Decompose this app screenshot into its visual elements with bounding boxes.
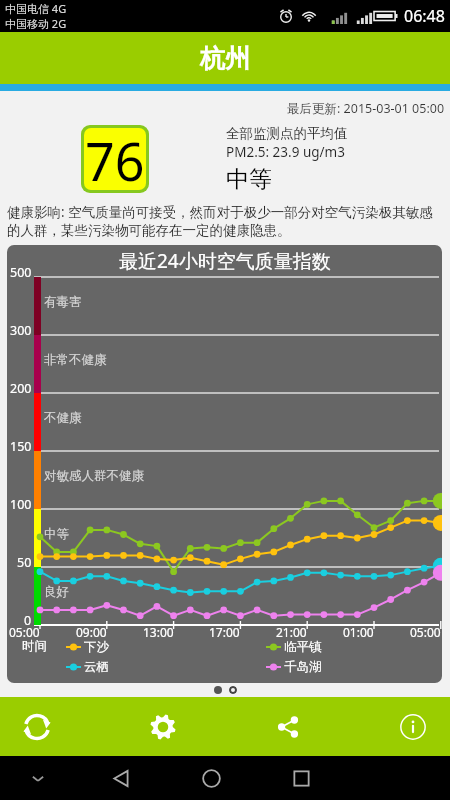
staticText: 0 xyxy=(24,612,32,629)
staticText: 千岛湖 xyxy=(284,659,322,675)
staticText: 最近24小时空气质量指数 xyxy=(119,248,331,274)
staticText: 50 xyxy=(17,554,32,571)
staticText: 01:00 xyxy=(343,624,374,640)
staticText: 中等 xyxy=(226,165,272,194)
staticText: 76 xyxy=(85,128,145,187)
staticText: 05:00 xyxy=(9,624,40,640)
staticText: 150 xyxy=(10,438,32,455)
button[interactable]: Settings xyxy=(100,697,225,756)
staticText: 中国电信 4G xyxy=(5,1,67,16)
button[interactable]: 杭州 xyxy=(0,32,450,84)
staticText: 云栖 xyxy=(84,659,109,675)
button[interactable]: Info xyxy=(350,697,450,756)
staticText: 05:00 xyxy=(410,624,441,640)
staticText: 中国移动 2G xyxy=(5,16,67,31)
staticText: 最后更新: 2015-03-01 05:00 xyxy=(287,100,445,117)
staticText: 100 xyxy=(10,496,32,513)
button[interactable]: Refresh xyxy=(0,697,100,756)
staticText: 下沙 xyxy=(84,639,109,655)
staticText: PM2.5: 23.9 ug/m3 xyxy=(226,143,345,161)
staticText: 中等 xyxy=(44,526,69,542)
staticText: 13:00 xyxy=(143,624,174,640)
staticText: 对敏感人群不健康 xyxy=(44,468,144,484)
staticText: 良好 xyxy=(44,584,69,600)
staticText: 临平镇 xyxy=(284,639,322,655)
staticText: 500 xyxy=(10,264,32,281)
staticText: 09:00 xyxy=(76,624,107,640)
staticText: 不健康 xyxy=(44,410,82,426)
staticText: 300 xyxy=(10,322,32,339)
staticText: 21:00 xyxy=(276,624,307,640)
staticText: 有毒害 xyxy=(44,294,82,310)
button[interactable]: Share xyxy=(225,697,350,756)
staticText: 时间 xyxy=(22,638,47,654)
staticText: 健康影响: 空气质量尚可接受，然而对于极少一部分对空气污染极其敏感的人群，某些污… xyxy=(7,203,442,239)
staticText: 非常不健康 xyxy=(44,352,107,368)
staticText: 杭州 xyxy=(200,43,250,74)
staticText: 17:00 xyxy=(209,624,240,640)
staticText: 200 xyxy=(10,380,32,397)
staticText: 全部监测点的平均值 xyxy=(226,125,348,142)
staticText: 06:48 xyxy=(404,5,445,27)
